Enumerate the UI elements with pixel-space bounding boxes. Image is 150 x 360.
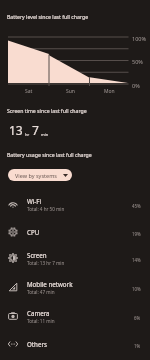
staticText: 6% [134, 315, 141, 321]
button[interactable]: Mobile network [0, 272, 150, 302]
staticText: 1% [134, 343, 141, 349]
staticText: 45% [132, 203, 141, 209]
staticText: Battery level since last full charge [7, 13, 89, 20]
staticText: 100% [132, 35, 147, 42]
button[interactable]: View by systems [8, 169, 72, 181]
button[interactable]: Camera [0, 301, 150, 331]
staticText: CPU [27, 228, 40, 236]
staticText: Mon [104, 88, 115, 95]
staticText: 14% [132, 257, 141, 263]
button[interactable]: CPU [0, 219, 150, 245]
staticText: 10% [132, 286, 141, 292]
staticText: Total: 4 hr 50 min [27, 206, 65, 212]
staticText: Sat [25, 88, 33, 95]
staticText: Screen [27, 251, 47, 259]
button[interactable]: Screen [0, 243, 150, 273]
staticText: hr [25, 132, 30, 137]
staticText: Screen time since last full charge [7, 107, 87, 114]
button[interactable]: Wi-Fi [0, 189, 150, 219]
staticText: min [41, 132, 49, 137]
staticText: Mobile network [27, 280, 73, 288]
staticText: Others [27, 340, 47, 348]
staticText: Total: 13 hr 7 min [27, 260, 65, 266]
staticText: 0% [132, 82, 140, 89]
staticText: Total: 11 min [27, 318, 55, 324]
staticText: 50% [132, 58, 143, 65]
staticText: 19% [132, 231, 141, 237]
staticText: 7 [32, 122, 39, 138]
staticText: View by systems [15, 172, 57, 179]
button[interactable]: Others [0, 331, 150, 357]
staticText: Camera [27, 309, 50, 317]
staticText: 13 [9, 122, 23, 138]
staticText: Total: 47 min [27, 289, 55, 295]
staticText: Battery usage since last full charge [7, 151, 92, 158]
staticText: Wi-Fi [27, 197, 42, 205]
staticText: Sun [66, 88, 75, 95]
